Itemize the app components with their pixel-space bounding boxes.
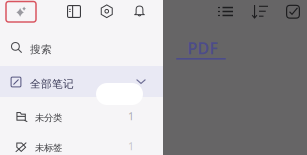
button[interactable]: Toggle Sidebar (67, 5, 81, 18)
button[interactable]: Settings (100, 4, 113, 18)
button[interactable]: PDF (186, 41, 220, 55)
staticText: 未分类 (35, 112, 62, 124)
button[interactable]: List options (218, 5, 233, 17)
button[interactable]: Select (286, 5, 300, 19)
button[interactable]: 全部笔记 (0, 66, 163, 97)
button[interactable]: 未标签 (0, 134, 163, 155)
staticText: 1 (128, 109, 134, 123)
staticText: 1 (128, 139, 134, 153)
staticText: 搜索 (30, 43, 52, 56)
button[interactable]: Sort (252, 5, 268, 18)
button[interactable]: Notifications (133, 5, 146, 18)
button[interactable]: 搜索 (0, 37, 163, 59)
staticText: PDF (187, 37, 218, 59)
button[interactable]: Assistant (6, 1, 36, 22)
button[interactable]: 未分类 (0, 103, 163, 130)
staticText: 未标签 (35, 142, 62, 154)
staticText: 全部笔记 (30, 77, 74, 90)
